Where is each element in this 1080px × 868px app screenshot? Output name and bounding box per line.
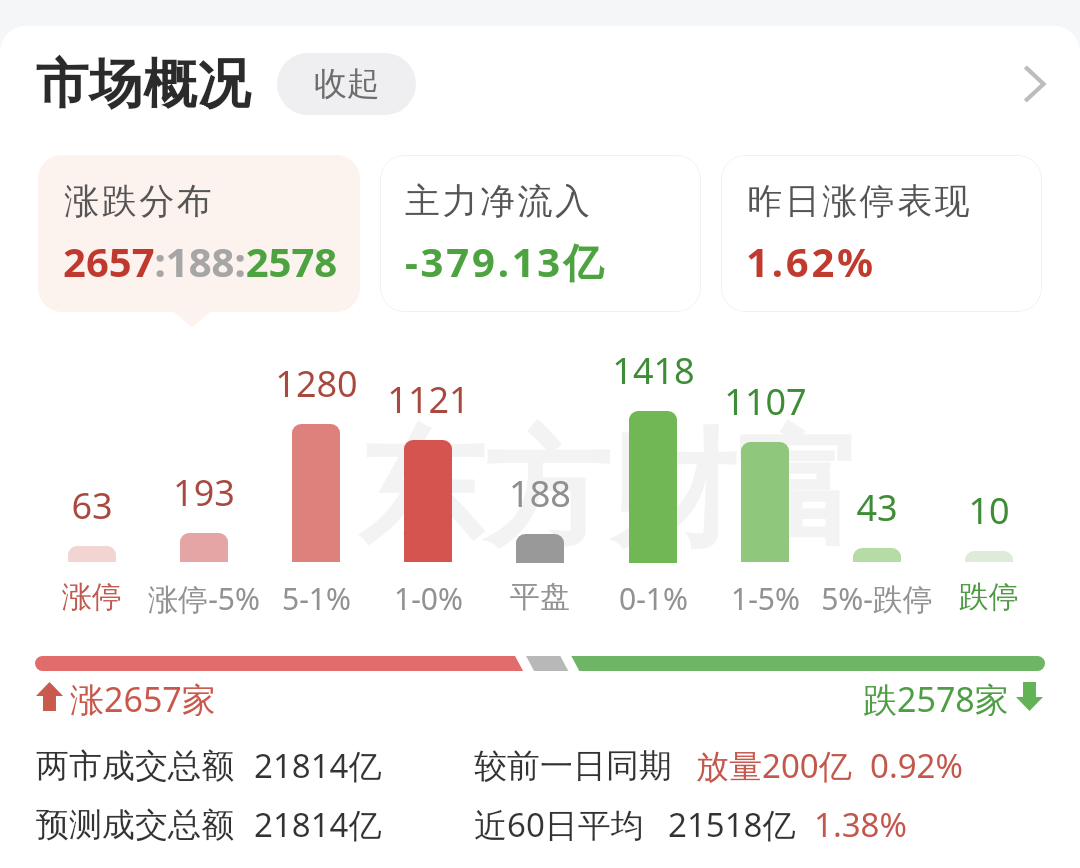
- staticText: 涨停: [62, 578, 122, 616]
- button[interactable]: 5%-跌停: [821, 578, 933, 616]
- staticText: 5-1%: [282, 578, 351, 616]
- staticText: 21814亿: [254, 743, 382, 788]
- button[interactable]: 1-0%: [372, 578, 484, 616]
- staticText: 193: [173, 468, 235, 517]
- staticText: 2657:188:2578: [63, 234, 338, 288]
- button[interactable]: 1-5%: [709, 578, 821, 616]
- staticText: 市场概况: [35, 51, 251, 118]
- staticText: 较前一日同期: [474, 745, 672, 787]
- staticText: 1280: [275, 359, 358, 408]
- button[interactable]: 主力净流入: [380, 155, 701, 312]
- staticText: 5%-跌停: [821, 578, 933, 616]
- staticText: 1418: [612, 346, 695, 395]
- button[interactable]: 涨停-5%: [148, 578, 260, 616]
- staticText: 1.62%: [746, 234, 876, 288]
- staticText: 1121: [387, 375, 470, 424]
- button[interactable]: 5-1%: [260, 578, 372, 616]
- staticText: -379.13亿: [405, 234, 606, 289]
- button[interactable]: 跌停: [933, 578, 1045, 616]
- staticText: 近60日平均: [474, 802, 644, 847]
- staticText: 21518亿: [668, 802, 796, 847]
- staticText: 跌2578家: [863, 676, 1009, 716]
- button[interactable]: 收起: [277, 53, 416, 115]
- button[interactable]: 昨日涨停表现: [721, 155, 1042, 312]
- staticText: 10: [968, 486, 1010, 535]
- button[interactable]: 展开更多: [1002, 52, 1066, 116]
- staticText: 188: [509, 469, 571, 518]
- staticText: 涨2657家: [70, 676, 216, 716]
- staticText: 昨日涨停表现: [746, 179, 971, 223]
- staticText: 0.92%: [870, 743, 963, 788]
- staticText: 涨停-5%: [148, 578, 260, 616]
- button[interactable]: 涨跌分布: [38, 155, 360, 312]
- button[interactable]: 市场概况: [0, 46, 1080, 122]
- staticText: 预测成交总额: [36, 804, 234, 846]
- staticText: 0-1%: [619, 578, 688, 616]
- staticText: 1107: [724, 377, 807, 426]
- staticText: 1.38%: [814, 802, 907, 847]
- staticText: 主力净流入: [405, 179, 593, 223]
- staticText: 1-0%: [394, 578, 463, 616]
- staticText: 跌停: [959, 578, 1019, 616]
- staticText: 21814亿: [254, 802, 382, 847]
- staticText: 放量200亿: [696, 743, 852, 788]
- staticText: 63: [71, 481, 113, 530]
- button[interactable]: 0-1%: [597, 578, 709, 616]
- staticText: 平盘: [510, 578, 570, 616]
- button[interactable]: 涨停: [36, 578, 148, 616]
- button[interactable]: 平盘: [484, 578, 596, 616]
- staticText: 两市成交总额: [36, 745, 234, 787]
- staticText: 涨跌分布: [63, 179, 213, 223]
- staticText: 43: [856, 483, 898, 532]
- staticText: 收起: [314, 63, 380, 105]
- staticText: 东方财富: [358, 412, 862, 571]
- staticText: 1-5%: [731, 578, 800, 616]
